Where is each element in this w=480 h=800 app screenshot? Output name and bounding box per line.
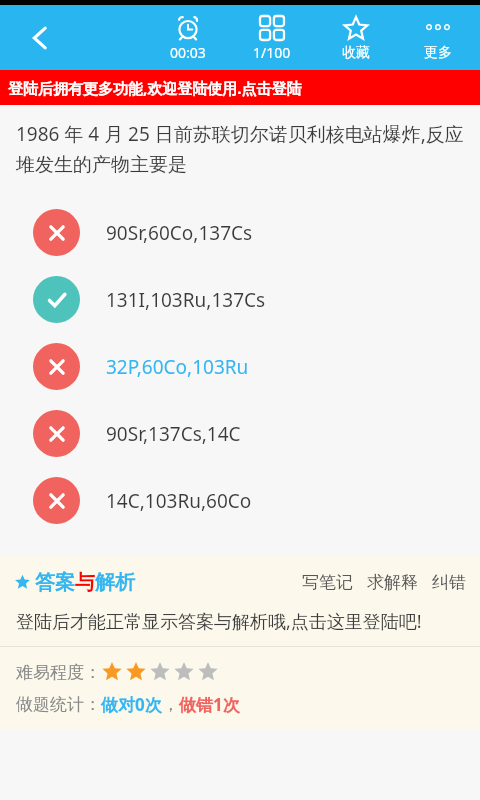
button[interactable]: Question list [236, 10, 308, 66]
button[interactable]: 收藏 [320, 11, 392, 66]
staticText: 收藏 [342, 44, 370, 62]
button[interactable]: 登陆后拥有更多功能,欢迎登陆使用.点击登陆 [0, 70, 480, 105]
button[interactable]: 答案 [14, 570, 135, 595]
button[interactable]: Back [14, 12, 66, 64]
staticText: 做题统计： [16, 694, 101, 715]
staticText: 1/100 [253, 43, 291, 62]
button[interactable]: 登陆后才能正常显示答案与解析哦,点击这里登陆吧! [16, 609, 466, 634]
staticText: 纠错 [432, 572, 466, 593]
button[interactable]: 32P,60Co,103Ru [0, 333, 480, 400]
staticText: 答案 [35, 570, 75, 595]
button[interactable]: 更多 [402, 11, 474, 66]
staticText: 做错1次 [179, 693, 240, 716]
staticText: 登陆后才能正常显示答案与解析哦,点击这里登陆吧! [16, 609, 422, 634]
staticText: 求解释 [367, 572, 418, 593]
staticText: 做对0次 [101, 693, 162, 716]
staticText: 解析 [95, 570, 135, 595]
button[interactable]: 纠错 [432, 568, 466, 597]
button[interactable]: 写笔记 [302, 568, 353, 597]
button[interactable]: 90Sr,60Co,137Cs [0, 199, 480, 266]
button[interactable]: 131I,103Ru,137Cs [0, 266, 480, 333]
staticText: 90Sr,60Co,137Cs [106, 220, 253, 246]
staticText: ， [162, 694, 179, 715]
staticText: 131I,103Ru,137Cs [106, 287, 266, 313]
staticText: 更多 [424, 44, 452, 62]
staticText: 登陆后拥有更多功能,欢迎登陆使用.点击登陆 [8, 78, 302, 98]
staticText: 写笔记 [302, 572, 353, 593]
staticText: 1986 年 4 月 25 日前苏联切尔诺贝利核电站爆炸,反应堆发生的产物主要是 [16, 121, 466, 177]
staticText: 32P,60Co,103Ru [106, 354, 249, 380]
button[interactable]: 90Sr,137Cs,14C [0, 400, 480, 467]
button[interactable]: 14C,103Ru,60Co [0, 467, 480, 534]
staticText: 90Sr,137Cs,14C [106, 421, 241, 447]
button[interactable]: 求解释 [367, 568, 418, 597]
staticText: 00:03 [170, 43, 206, 62]
button[interactable]: Timer [152, 10, 224, 66]
staticText: 难易程度： [16, 662, 101, 683]
staticText: 14C,103Ru,60Co [106, 488, 252, 514]
staticText: 与 [75, 570, 95, 595]
